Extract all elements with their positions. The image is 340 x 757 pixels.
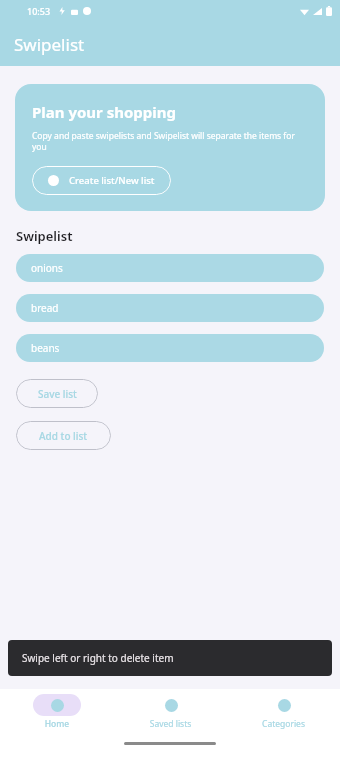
staticText: Swipelist (16, 227, 73, 245)
button[interactable]: Create list/New list (32, 166, 171, 195)
staticText: Home (0, 718, 114, 730)
staticText: Saved lists (114, 718, 227, 730)
staticText: onions (31, 261, 63, 275)
button[interactable]: Plan your shopping (15, 84, 325, 211)
button[interactable]: Save list (16, 379, 98, 408)
button[interactable]: Home (0, 694, 114, 730)
staticText: Plan your shopping (32, 102, 177, 122)
staticText: 10:53 (27, 5, 51, 17)
staticText: Categories (227, 718, 340, 730)
button[interactable]: beans (16, 334, 324, 362)
staticText: beans (31, 341, 60, 355)
button[interactable]: bread (16, 294, 324, 322)
staticText: Copy and paste swipelists and Swipelist … (32, 130, 309, 152)
staticText: Add to list (39, 429, 88, 443)
button[interactable]: Categories (227, 694, 340, 730)
button[interactable]: Swipe left or right to delete item (8, 640, 332, 676)
staticText: Swipe left or right to delete item (22, 651, 174, 665)
staticText: bread (31, 301, 59, 315)
staticText: Create list/New list (69, 174, 155, 187)
staticText: Swipelist (14, 33, 85, 56)
button[interactable]: Add to list (16, 421, 111, 450)
button[interactable]: onions (16, 254, 324, 282)
button[interactable]: Saved lists (114, 694, 227, 730)
staticText: Save list (38, 387, 77, 401)
